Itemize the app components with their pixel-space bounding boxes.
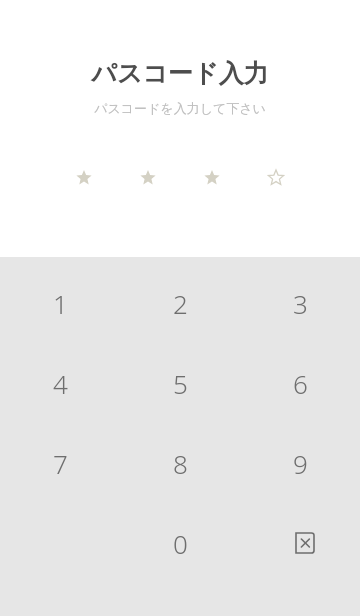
button[interactable]: 9	[240, 423, 360, 503]
staticText: 9	[293, 446, 308, 481]
staticText: 5	[173, 366, 188, 401]
staticText: 4	[53, 366, 68, 401]
button[interactable]: 6	[240, 343, 360, 423]
button[interactable]: 7	[0, 423, 120, 503]
button[interactable]: 3	[240, 263, 360, 343]
staticText: 8	[173, 446, 188, 481]
button[interactable]: 1	[0, 263, 120, 343]
button[interactable]: 5	[120, 343, 240, 423]
button[interactable]: 2	[120, 263, 240, 343]
staticText: 2	[173, 286, 188, 321]
button[interactable]: 4	[0, 343, 120, 423]
staticText: 1	[53, 286, 68, 321]
staticText: 6	[293, 366, 308, 401]
button[interactable]: Delete	[240, 503, 360, 583]
staticText: パスコードを入力して下さい	[94, 100, 266, 116]
staticText: 7	[53, 446, 68, 481]
staticText: パスコード入力	[91, 58, 269, 89]
button[interactable]: 0	[120, 503, 240, 583]
staticText: 3	[293, 286, 308, 321]
button[interactable]: 8	[120, 423, 240, 503]
staticText: 0	[173, 526, 188, 561]
